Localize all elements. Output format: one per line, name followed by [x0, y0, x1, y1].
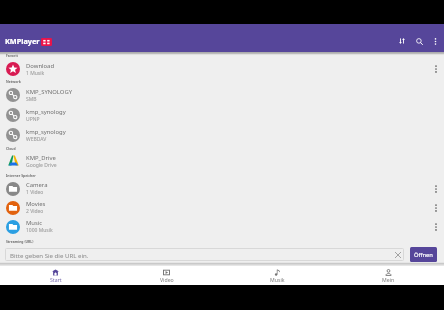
staticText: Google Drive: [26, 162, 57, 169]
staticText: Bitte geben Sie die URL ein.: [10, 251, 393, 259]
staticText: KMPlayer: [5, 36, 40, 46]
staticText: Musik: [270, 276, 285, 283]
staticText: KMP_Drive: [26, 154, 56, 162]
staticText: UPNP: [26, 116, 40, 123]
button[interactable]: Music: [0, 217, 444, 236]
staticText: Streaming (URL): [6, 239, 34, 244]
staticText: Cloud: [6, 146, 16, 151]
button[interactable]: More options: [428, 200, 444, 216]
staticText: Interner Speicher: [6, 173, 36, 178]
button[interactable]: Start: [0, 266, 111, 285]
staticText: 1 Video: [26, 189, 44, 196]
staticText: SMB: [26, 96, 37, 103]
staticText: Video: [160, 276, 174, 283]
button[interactable]: KMP_SYNOLOGY: [0, 85, 444, 105]
staticText: kmp_synology: [26, 128, 66, 136]
button[interactable]: Movies: [0, 198, 444, 217]
button[interactable]: More options: [428, 219, 444, 235]
button[interactable]: KMP_Drive: [0, 152, 444, 170]
button[interactable]: kmp_synology: [0, 125, 444, 145]
staticText: Movies: [26, 200, 46, 208]
button[interactable]: Öffnen: [410, 247, 437, 262]
button[interactable]: Download: [0, 59, 444, 79]
button[interactable]: Search: [411, 33, 427, 49]
staticText: Camera: [26, 181, 48, 189]
button[interactable]: Musik: [222, 266, 333, 285]
button[interactable]: Camera: [0, 179, 444, 198]
staticText: Network: [6, 79, 21, 84]
button[interactable]: Video: [111, 266, 222, 285]
button[interactable]: Mein: [333, 266, 444, 285]
button[interactable]: Clear: [393, 250, 402, 259]
staticText: KMP_SYNOLOGY: [26, 88, 73, 96]
button[interactable]: Bitte geben Sie die URL ein.: [5, 248, 404, 261]
staticText: Mein: [382, 276, 395, 283]
button[interactable]: Sort: [394, 33, 410, 49]
staticText: Start: [50, 276, 62, 283]
staticText: Download: [26, 62, 55, 70]
button[interactable]: More options: [428, 61, 444, 77]
staticText: 1000 Musik: [26, 227, 53, 234]
staticText: 1 Musik: [26, 70, 45, 77]
staticText: WEBDAV: [26, 136, 47, 143]
staticText: 2 Video: [26, 208, 44, 215]
staticText: Music: [26, 219, 43, 227]
staticText: Favorit: [6, 53, 18, 58]
button[interactable]: More options: [428, 34, 443, 49]
staticText: Öffnen: [414, 251, 433, 259]
staticText: kmp_synology: [26, 108, 66, 116]
button[interactable]: kmp_synology: [0, 105, 444, 125]
button[interactable]: More options: [428, 181, 444, 197]
